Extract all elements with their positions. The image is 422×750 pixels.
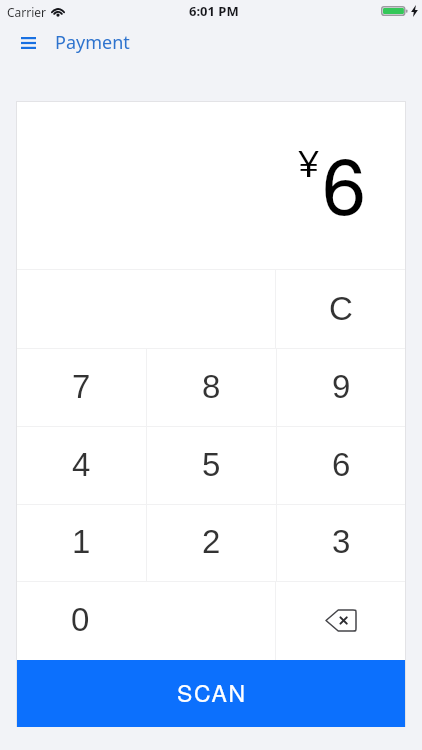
staticText: Carrier	[7, 4, 47, 20]
button[interactable]: 5	[147, 427, 276, 504]
button[interactable]: 4	[16, 427, 146, 504]
button[interactable]: 3	[277, 505, 406, 581]
staticText: 3	[332, 523, 351, 560]
staticText: 8	[202, 368, 221, 405]
staticText: 6	[332, 446, 351, 483]
button[interactable]: SCAN	[16, 660, 406, 727]
button[interactable]: 1	[16, 505, 146, 581]
button[interactable]: 9	[277, 349, 406, 426]
button[interactable]: 2	[147, 505, 276, 581]
button[interactable]: Menu	[14, 28, 42, 56]
staticText: Payment	[55, 30, 130, 55]
staticText: C	[329, 290, 353, 327]
staticText: 5	[202, 446, 221, 483]
staticText: 4	[72, 446, 91, 483]
staticText: 6	[322, 124, 366, 237]
button[interactable]: 6	[277, 427, 406, 504]
staticText: ¥	[298, 133, 320, 187]
staticText: SCAN	[177, 676, 247, 709]
staticText: 2	[202, 523, 221, 560]
staticText: 1	[72, 523, 91, 560]
staticText: 0	[71, 601, 90, 638]
button[interactable]: 7	[16, 349, 146, 426]
button[interactable]: 0	[16, 582, 145, 660]
staticText: 7	[72, 368, 91, 405]
button[interactable]: Backspace	[276, 582, 406, 660]
staticText: 9	[332, 368, 351, 405]
button[interactable]: C	[276, 270, 406, 348]
button[interactable]: 8	[147, 349, 276, 426]
staticText: 6:01 PM	[189, 2, 239, 20]
